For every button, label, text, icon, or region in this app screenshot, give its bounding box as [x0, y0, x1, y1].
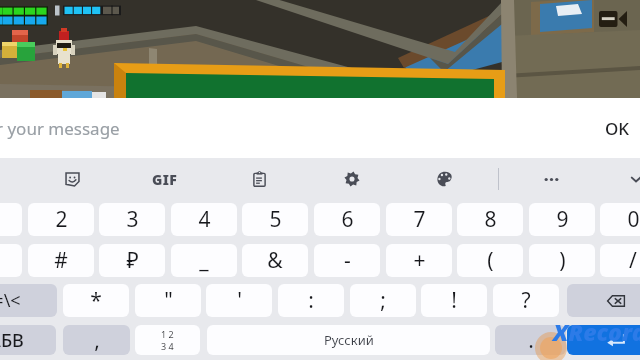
staticText: ! [451, 286, 457, 315]
staticText: , [94, 326, 100, 355]
button[interactable]: 4 [171, 203, 237, 236]
button[interactable]: 6 [314, 203, 380, 236]
button[interactable]: / [600, 244, 640, 277]
staticText: 4 [198, 205, 211, 234]
button[interactable]: + [386, 244, 452, 277]
staticText: : [308, 286, 314, 315]
button[interactable]: r your message [0, 98, 640, 158]
button[interactable]: ? [493, 284, 559, 317]
staticText: ? [521, 286, 531, 315]
button[interactable]: ! [421, 284, 487, 317]
button[interactable]: GIF [148, 165, 182, 193]
staticText: ( [487, 246, 494, 275]
button[interactable]: , [63, 325, 130, 355]
staticText: АБВ [0, 328, 24, 353]
button[interactable]: " [135, 284, 201, 317]
button[interactable]: Clipboard [244, 164, 274, 194]
staticText: . [528, 326, 534, 355]
button[interactable]: ( [457, 244, 523, 277]
button[interactable]: 8 [457, 203, 523, 236]
button[interactable]: Settings [337, 164, 367, 194]
button[interactable]: Enter [567, 325, 640, 355]
button[interactable]: ₽ [99, 244, 165, 277]
staticText: GIF [152, 170, 178, 189]
staticText: r your message [0, 117, 120, 140]
staticText: + [413, 246, 426, 275]
button[interactable]: Hide keyboard [621, 164, 640, 194]
staticText: # [54, 246, 68, 275]
staticText: _ [199, 246, 209, 275]
button[interactable]: ; [350, 284, 416, 317]
button[interactable]: 0 [600, 203, 640, 236]
button[interactable]: - [314, 244, 380, 277]
staticText: 2 [55, 205, 68, 234]
button[interactable]: Stickers [57, 164, 87, 194]
button[interactable]: =\< [0, 284, 57, 317]
staticText: 9 [556, 205, 569, 234]
button[interactable]: Backspace [567, 284, 640, 317]
staticText: - [344, 246, 351, 275]
button[interactable]: * [63, 284, 129, 317]
staticText: OK [605, 117, 630, 140]
button[interactable]: 9 [529, 203, 595, 236]
button[interactable]: : [278, 284, 344, 317]
button[interactable]: 2 [28, 203, 94, 236]
staticText: 7 [413, 205, 426, 234]
button[interactable]: Numbers [135, 325, 200, 355]
button[interactable]: . [495, 325, 566, 355]
button[interactable]: 7 [386, 203, 452, 236]
staticText: =\< [0, 288, 21, 313]
staticText: Русский [324, 331, 374, 349]
staticText: XRecorder [553, 316, 640, 347]
button[interactable]: ) [529, 244, 595, 277]
button[interactable]: OK [605, 117, 630, 140]
staticText: ₽ [126, 246, 139, 275]
staticText: / [629, 246, 637, 275]
button[interactable]: Русский [207, 325, 490, 355]
staticText: 3 4 [161, 340, 174, 352]
staticText: ; [380, 286, 386, 315]
button[interactable]: ' [206, 284, 272, 317]
staticText: 8 [484, 205, 497, 234]
staticText: & [267, 246, 283, 275]
staticText: ' [237, 286, 242, 315]
staticText: 1 2 [161, 328, 174, 340]
button[interactable]: 5 [242, 203, 308, 236]
button[interactable]: & [242, 244, 308, 277]
button[interactable]: # [28, 244, 94, 277]
staticText: * [90, 286, 102, 315]
staticText: 5 [269, 205, 282, 234]
button[interactable]: Screen recorder [596, 8, 630, 30]
staticText: ) [559, 246, 566, 275]
staticText: 0 [627, 205, 640, 234]
staticText: 3 [126, 205, 139, 234]
button[interactable]: More options [536, 164, 566, 194]
button[interactable]: 3 [99, 203, 165, 236]
staticText: 6 [341, 205, 354, 234]
button[interactable]: АБВ [0, 325, 56, 355]
button[interactable]: Themes [430, 164, 460, 194]
staticText: " [164, 286, 173, 315]
button[interactable]: _ [171, 244, 237, 277]
